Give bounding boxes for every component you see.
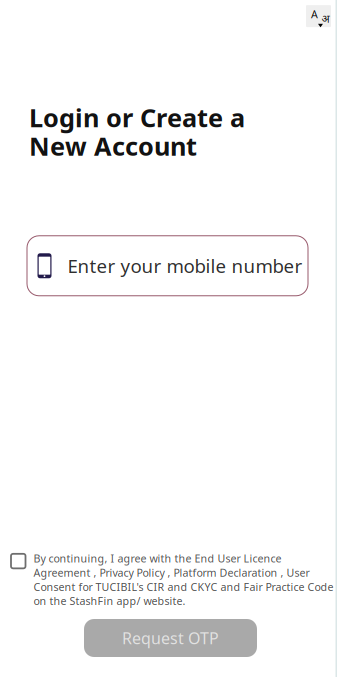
staticText: Consent for TUCIBIL's CIR and CKYC and F… [33, 580, 333, 594]
staticText: Enter your mobile number [67, 253, 302, 278]
button[interactable]: Enter your mobile number [27, 236, 308, 296]
staticText: अ [321, 11, 329, 26]
staticText: on the StashFin app/ website. [33, 594, 185, 608]
staticText: By continuing, I agree with the End User… [33, 551, 281, 565]
staticText: Request OTP [122, 627, 219, 649]
staticText: Login or Create a [29, 100, 245, 134]
staticText: A [311, 7, 318, 21]
staticText: Agreement , Privacy Policy , Platform De… [33, 565, 309, 580]
staticText: New Account [29, 129, 197, 163]
button[interactable]: Request OTP [84, 619, 257, 657]
button[interactable]: Change language [306, 0, 331, 28]
button[interactable]: Agree to terms and conditions [11, 554, 25, 568]
